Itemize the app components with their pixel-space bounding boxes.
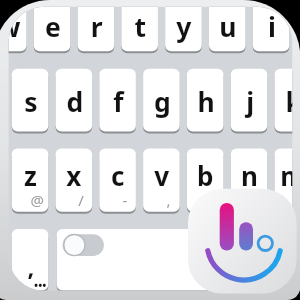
button[interactable]: TouchPal keyboard [0, 0, 300, 300]
other: TouchPal keyboard [0, 0, 300, 300]
